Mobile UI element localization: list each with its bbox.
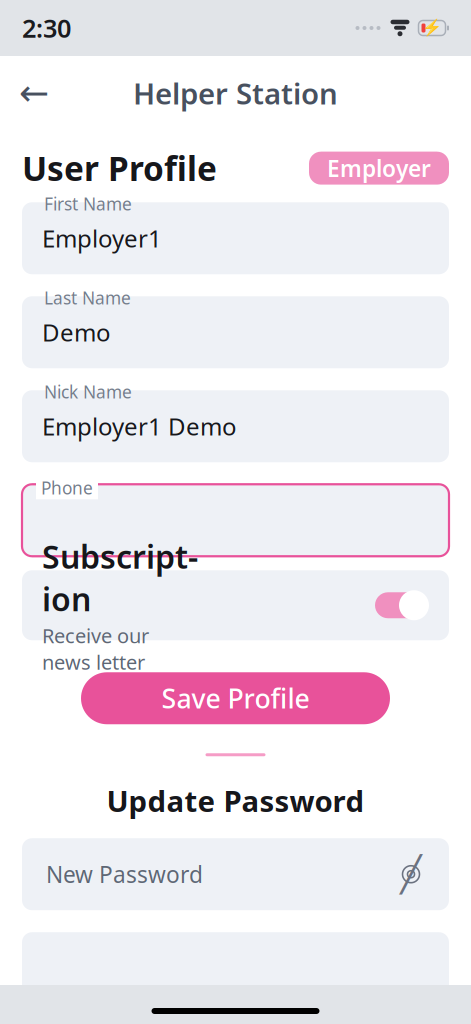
staticText: Employer1 — [42, 222, 162, 254]
button[interactable]: Save Profile — [81, 672, 390, 724]
button[interactable] — [22, 932, 449, 1004]
staticText: ⚡ — [422, 19, 442, 37]
staticText: User Profile — [22, 146, 217, 190]
button[interactable]: Phone — [22, 474, 449, 556]
button[interactable]: Back — [11, 70, 57, 116]
staticText: Employer — [327, 153, 431, 183]
staticText: Helper Station — [133, 73, 338, 112]
button[interactable]: Demo — [22, 286, 449, 368]
staticText: Demo — [42, 316, 111, 348]
staticText: Phone — [41, 476, 93, 499]
staticText: Nick Name — [44, 380, 132, 403]
staticText: Subscription — [42, 535, 198, 620]
button[interactable]: Employer — [309, 152, 449, 185]
staticText: First Name — [44, 192, 132, 215]
staticText: Update Password — [106, 781, 364, 820]
staticText: ╱ — [400, 854, 421, 894]
button[interactable]: Subscription toggle — [22, 570, 449, 640]
staticText: ← — [19, 73, 49, 113]
staticText: Save Profile — [161, 681, 309, 716]
staticText: New Password — [46, 859, 203, 889]
button[interactable]: Employer1 — [22, 192, 449, 274]
staticText: Employer1 Demo — [42, 410, 237, 442]
button[interactable]: New Password — [22, 838, 449, 910]
staticText: 2:30 — [22, 11, 71, 45]
staticText: Receive our news letter — [42, 622, 149, 675]
button[interactable]: Employer1 Demo — [22, 380, 449, 462]
staticText: Last Name — [44, 286, 131, 309]
